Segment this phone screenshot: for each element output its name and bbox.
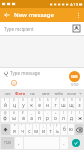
staticText: 0 xyxy=(79,98,81,102)
staticText: 6 xyxy=(47,98,49,102)
button[interactable]: Backspace xyxy=(75,124,83,135)
button[interactable]: Emoji xyxy=(10,79,17,86)
staticText: если xyxy=(67,91,76,96)
staticText: ж xyxy=(78,115,82,122)
button[interactable]: на xyxy=(26,89,39,97)
staticText: ш xyxy=(61,102,66,109)
button[interactable]: если xyxy=(65,89,78,97)
button[interactable]: , xyxy=(15,137,23,149)
button[interactable]: 2 xyxy=(10,98,18,109)
button[interactable]: . xyxy=(60,137,68,149)
button[interactable]: 5 xyxy=(36,98,43,109)
button[interactable]: 6 xyxy=(44,98,51,109)
button[interactable]: _ xyxy=(28,111,35,122)
button[interactable]: 0 xyxy=(76,98,83,109)
button[interactable]: 1 xyxy=(1,98,9,109)
staticText: ю xyxy=(69,126,73,133)
button[interactable]: Send SMS xyxy=(69,71,80,82)
staticText: 9 xyxy=(71,98,73,102)
button[interactable]: Add contact xyxy=(72,24,81,33)
button[interactable]: 7 xyxy=(52,98,59,109)
button[interactable]: More suggestions xyxy=(78,89,83,97)
button[interactable]: : xyxy=(33,124,39,135)
staticText: 1 xyxy=(4,98,6,102)
button[interactable]: & xyxy=(36,111,43,122)
staticText: ' xyxy=(29,124,30,128)
staticText: _ xyxy=(31,111,33,115)
staticText: . xyxy=(63,140,65,147)
staticText: в xyxy=(22,115,25,122)
button[interactable]: # xyxy=(10,111,18,122)
button[interactable]: ₽ xyxy=(19,111,27,122)
button[interactable]: что xyxy=(1,89,13,97)
button[interactable]: - xyxy=(44,111,51,122)
button[interactable]: * xyxy=(11,124,18,135)
staticText: " xyxy=(21,124,23,128)
staticText: 7 xyxy=(55,98,57,102)
staticText: + xyxy=(55,111,57,115)
button[interactable]: тебя xyxy=(52,89,65,97)
staticText: ; xyxy=(43,124,44,128)
staticText: п xyxy=(38,115,41,122)
staticText: н xyxy=(46,102,49,109)
button[interactable]: ! xyxy=(47,124,53,135)
staticText: что xyxy=(4,91,11,96)
button[interactable]: + xyxy=(52,111,59,122)
staticText: - xyxy=(47,111,48,115)
button[interactable]: 9 xyxy=(68,98,75,109)
staticText: у xyxy=(22,102,25,109)
staticText: ь xyxy=(56,128,59,135)
staticText: ? xyxy=(56,124,58,128)
staticText: 5 xyxy=(39,98,41,102)
staticText: б xyxy=(63,126,66,133)
staticText: з xyxy=(78,102,81,109)
button[interactable]: 8 xyxy=(60,98,67,109)
staticText: на xyxy=(30,91,35,96)
staticText: 8 xyxy=(63,98,65,102)
staticText: ф xyxy=(3,115,7,122)
button[interactable]: Back xyxy=(0,8,13,22)
staticText: ?123 xyxy=(4,141,11,145)
staticText: 2 xyxy=(13,98,15,102)
staticText: Type message xyxy=(10,70,41,76)
staticText: 0/160 xyxy=(71,83,79,87)
button[interactable]: Фото xyxy=(13,89,26,97)
staticText: @ xyxy=(4,111,7,115)
button[interactable]: " xyxy=(19,124,25,135)
staticText: л xyxy=(62,115,65,122)
button[interactable]: б xyxy=(61,124,67,135)
button[interactable]: Enter xyxy=(69,137,83,149)
button[interactable]: ; xyxy=(40,124,46,135)
staticText: , xyxy=(18,140,20,147)
staticText: я xyxy=(13,128,16,135)
staticText: & xyxy=(38,111,41,115)
button[interactable]: ) xyxy=(68,111,75,122)
staticText: тебя xyxy=(54,91,63,96)
button[interactable]: 3 xyxy=(19,98,27,109)
staticText: д xyxy=(70,115,73,122)
staticText: 4:19 xyxy=(70,2,78,7)
button[interactable]: ? xyxy=(54,124,60,135)
button[interactable]: Shift xyxy=(1,124,10,135)
staticText: ( xyxy=(63,111,64,115)
staticText: ч xyxy=(21,128,24,135)
staticText: мне xyxy=(42,91,50,96)
button[interactable]: ' xyxy=(26,124,32,135)
staticText: # xyxy=(13,111,15,115)
button[interactable]: / xyxy=(76,111,83,122)
staticText: : xyxy=(36,124,37,128)
staticText: ) xyxy=(71,111,72,115)
button[interactable]: Attach xyxy=(2,70,10,78)
button[interactable]: @ xyxy=(1,111,9,122)
button[interactable]: ( xyxy=(60,111,67,122)
button[interactable]: ?123 xyxy=(1,137,14,149)
button[interactable]: More options xyxy=(73,8,84,22)
staticText: с xyxy=(28,128,31,135)
staticText: Type recipient xyxy=(4,26,34,32)
staticText: щ xyxy=(69,102,74,109)
button[interactable]: 4 xyxy=(28,98,35,109)
button[interactable]: мне xyxy=(39,89,52,97)
staticText: * xyxy=(14,124,16,128)
button[interactable]: ю xyxy=(68,124,74,135)
